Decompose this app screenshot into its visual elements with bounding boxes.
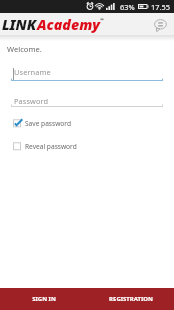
staticText: 63% [120,2,135,12]
staticText: Username [14,67,51,77]
staticText: Welcome. [7,44,42,54]
staticText: SIGN IN [32,295,56,303]
staticText: Save password [25,119,71,128]
staticText: LINK [2,15,37,34]
button[interactable]: Reveal password [0,141,174,152]
staticText: Password [14,96,49,106]
button[interactable]: Save password [0,118,174,129]
staticText: Academy [37,15,100,34]
staticText: 17.55 [151,2,170,12]
staticText: Reveal password [25,142,77,151]
button[interactable]: SIGN IN [0,288,87,310]
staticText: REGISTRATION [109,295,153,303]
button[interactable]: Messages [152,17,168,33]
button[interactable]: REGISTRATION [87,288,174,310]
